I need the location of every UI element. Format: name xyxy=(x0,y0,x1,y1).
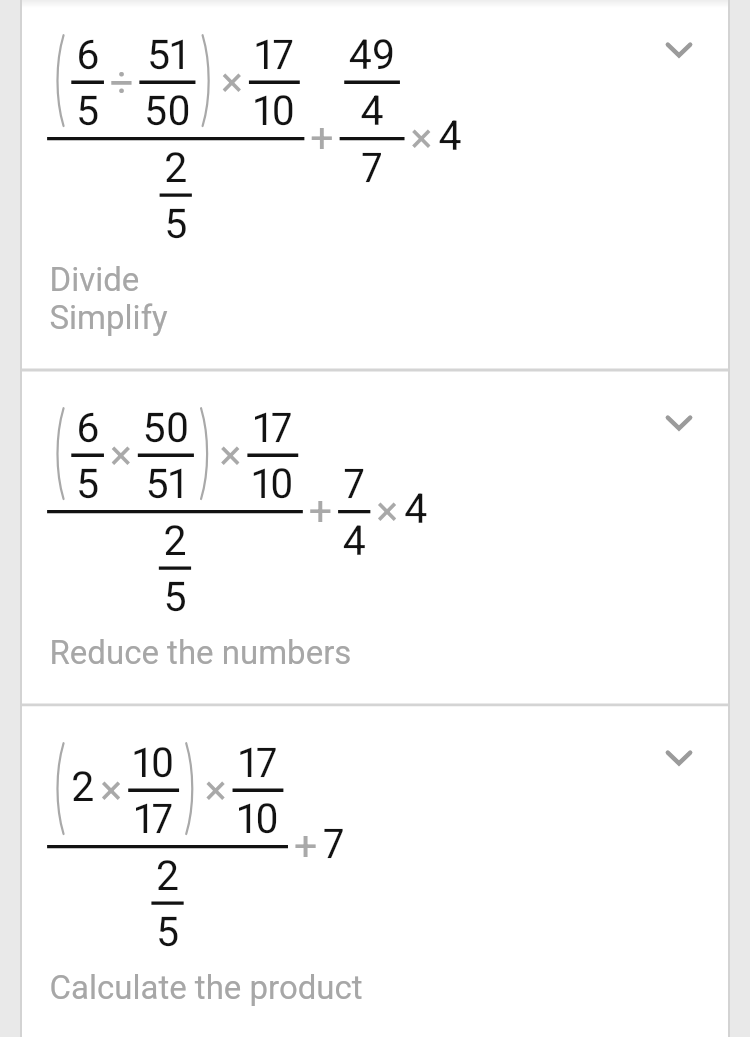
button[interactable]: Expand step xyxy=(22,371,728,706)
button[interactable]: Expand step xyxy=(647,18,711,82)
button[interactable]: Expand step xyxy=(647,726,711,790)
button[interactable]: Expand step xyxy=(22,0,728,371)
button[interactable]: Expand step xyxy=(22,706,728,1037)
button[interactable]: Expand step xyxy=(647,391,711,455)
